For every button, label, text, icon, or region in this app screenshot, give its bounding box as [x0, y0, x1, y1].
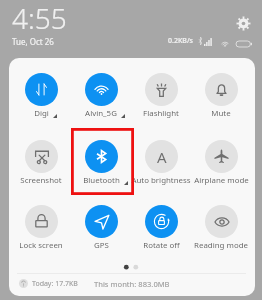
staticText: GPS [94, 240, 109, 251]
staticText: Flashlight [143, 108, 179, 119]
staticText: Tue, Oct 26 [12, 36, 54, 47]
staticText: This month: 883.0MB [94, 279, 170, 289]
button[interactable]: Digi [11, 73, 71, 119]
button[interactable]: Bluetooth [71, 140, 131, 186]
button[interactable]: Settings [236, 16, 251, 31]
staticText: Mute [211, 108, 231, 119]
staticText: Digi [34, 108, 49, 119]
staticText: Bluetooth [83, 175, 120, 186]
button[interactable]: Screenshot [11, 140, 71, 186]
button[interactable]: Reading mode [191, 205, 251, 251]
staticText: 4:55 [12, 0, 67, 37]
staticText: Airplane mode [194, 175, 249, 186]
staticText: Today: 17.7KB [32, 279, 78, 289]
staticText: Auto brightness [131, 175, 191, 186]
staticText: Rotate off [143, 240, 180, 251]
staticText: Reading mode [194, 240, 248, 251]
staticText: Screenshot [20, 175, 62, 186]
staticText: Lock screen [19, 240, 63, 251]
button[interactable]: Lock screen [11, 205, 71, 251]
button[interactable]: GPS [71, 205, 131, 251]
staticText: Alvin_5G [85, 108, 117, 119]
staticText: 0.2KB/s [168, 36, 194, 46]
button[interactable]: Mute [191, 73, 251, 119]
button[interactable]: Airplane mode [191, 140, 251, 186]
staticText: A [157, 147, 167, 167]
button[interactable]: Rotate off [131, 205, 191, 251]
button[interactable]: Alvin_5G [71, 73, 131, 119]
button[interactable]: A [131, 140, 191, 186]
button[interactable]: Flashlight [131, 73, 191, 119]
